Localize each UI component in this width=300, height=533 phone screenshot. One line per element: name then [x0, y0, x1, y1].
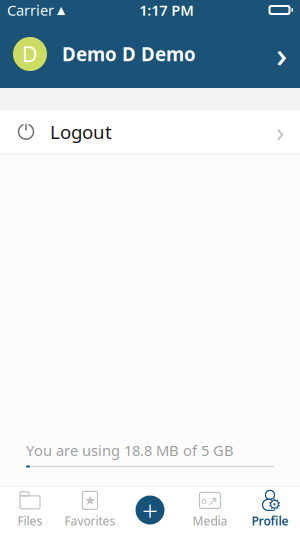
staticText: ⚙ — [268, 496, 281, 513]
button[interactable]: Files — [0, 487, 60, 533]
staticText: Carrier — [7, 0, 54, 20]
staticText: 1:17 PM — [139, 0, 194, 20]
staticText: Media — [192, 513, 227, 529]
staticText: + — [142, 491, 158, 529]
staticText: D — [22, 40, 38, 68]
button[interactable]: Favorites — [60, 487, 120, 533]
staticText: › — [276, 114, 284, 149]
button[interactable]: Logout — [0, 110, 300, 154]
staticText: ▲ — [57, 4, 65, 16]
staticText: Profile — [251, 513, 288, 529]
staticText: Favorites — [64, 513, 115, 529]
staticText: › — [276, 31, 287, 77]
button[interactable]: Add — [135, 491, 164, 529]
staticText: ↗ — [207, 494, 218, 509]
staticText: Logout — [50, 119, 112, 144]
button[interactable]: D — [0, 20, 300, 88]
button[interactable]: Profile — [240, 487, 300, 533]
staticText: ★ — [84, 493, 96, 508]
staticText: Files — [17, 513, 42, 529]
staticText: Demo D Demo — [62, 42, 196, 66]
staticText: You are using 18.8 MB of 5 GB — [26, 440, 234, 460]
button[interactable]: Media — [180, 487, 240, 533]
